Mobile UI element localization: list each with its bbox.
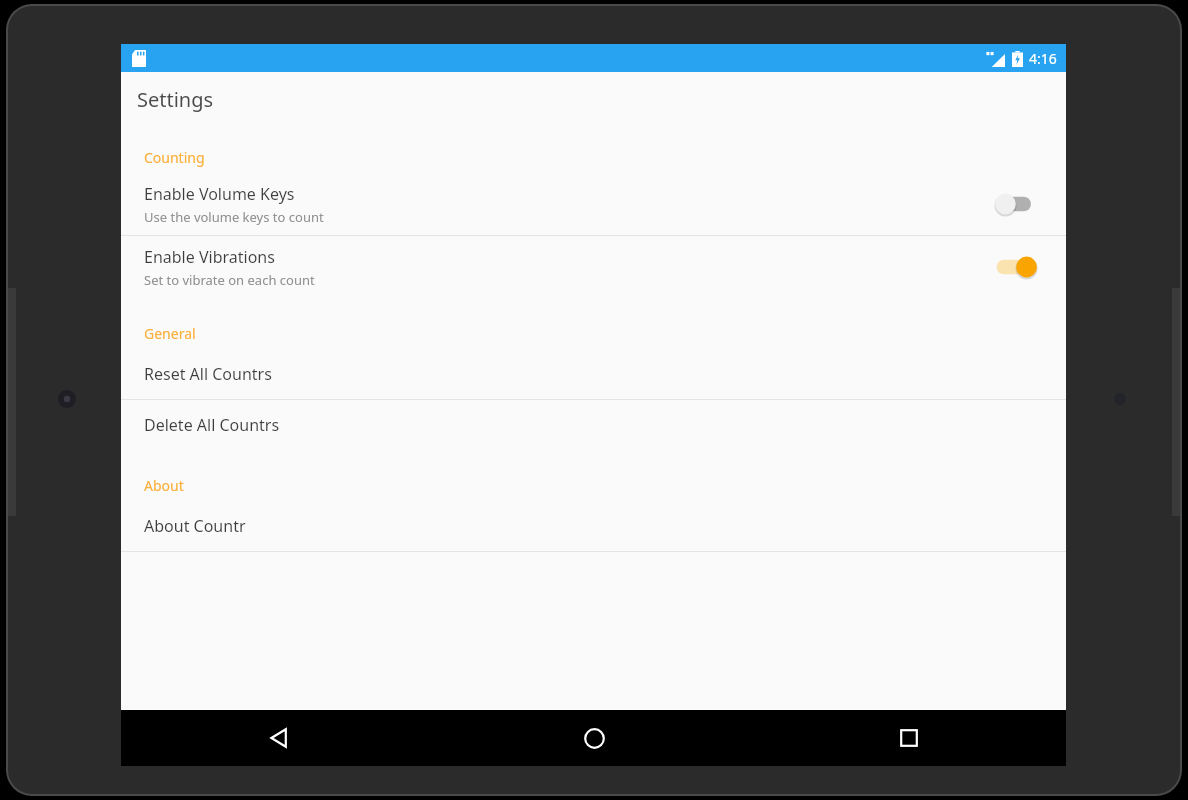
button[interactable]: Home	[570, 714, 618, 762]
staticText: Counting	[144, 148, 1066, 167]
staticText: Reset All Countrs	[144, 363, 272, 385]
staticText: Enable Vibrations	[144, 246, 275, 268]
staticText: Settings	[137, 86, 214, 113]
button[interactable]: Enable Vibrations	[121, 236, 1066, 298]
button[interactable]: Reset All Countrs	[121, 349, 1066, 399]
button[interactable]: Delete All Countrs	[121, 400, 1066, 450]
staticText: Delete All Countrs	[144, 414, 280, 436]
button[interactable]: Recent apps	[885, 714, 933, 762]
staticText: 4:16	[1029, 49, 1057, 68]
staticText: General	[144, 324, 1066, 343]
button[interactable]: Enable Volume Keys	[121, 173, 1066, 235]
button[interactable]: Back	[255, 714, 303, 762]
button[interactable]: Off	[994, 191, 1038, 217]
staticText: About	[144, 476, 1066, 495]
staticText: Use the volume keys to count	[144, 208, 324, 226]
staticText: Enable Volume Keys	[144, 183, 295, 205]
staticText: About Countr	[144, 515, 246, 537]
button[interactable]: About Countr	[121, 501, 1066, 551]
staticText: Set to vibrate on each count	[144, 271, 315, 289]
button[interactable]: On	[994, 254, 1038, 280]
